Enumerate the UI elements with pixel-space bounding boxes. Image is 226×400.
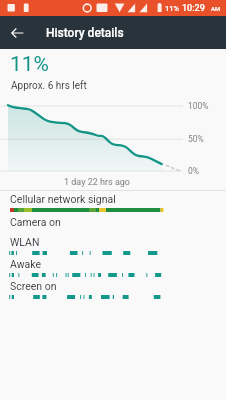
button[interactable]: Camera on — [0, 215, 226, 237]
button[interactable]: Cellular network signal — [0, 192, 226, 214]
staticText: Awake — [10, 258, 42, 270]
staticText: Cellular network signal — [10, 193, 116, 205]
staticText: 1 day 22 hrs ago — [64, 177, 131, 188]
staticText: Approx. 6 hrs left — [11, 80, 87, 92]
staticText: 11% — [165, 4, 180, 13]
staticText: History details — [46, 26, 124, 40]
staticText: Camera on — [10, 216, 61, 228]
staticText: 10:29 — [182, 3, 205, 14]
staticText: 50% — [188, 134, 204, 144]
staticText: 100% — [188, 101, 209, 111]
staticText: 11% — [10, 52, 49, 77]
staticText: Screen on — [10, 280, 57, 292]
button[interactable]: WLAN — [0, 235, 226, 257]
staticText: 0% — [188, 166, 200, 176]
staticText: WLAN — [10, 236, 40, 248]
staticText: AM — [211, 5, 221, 12]
button[interactable]: Awake — [0, 257, 226, 279]
button[interactable]: Back — [0, 16, 34, 49]
button[interactable]: Screen on — [0, 279, 226, 301]
